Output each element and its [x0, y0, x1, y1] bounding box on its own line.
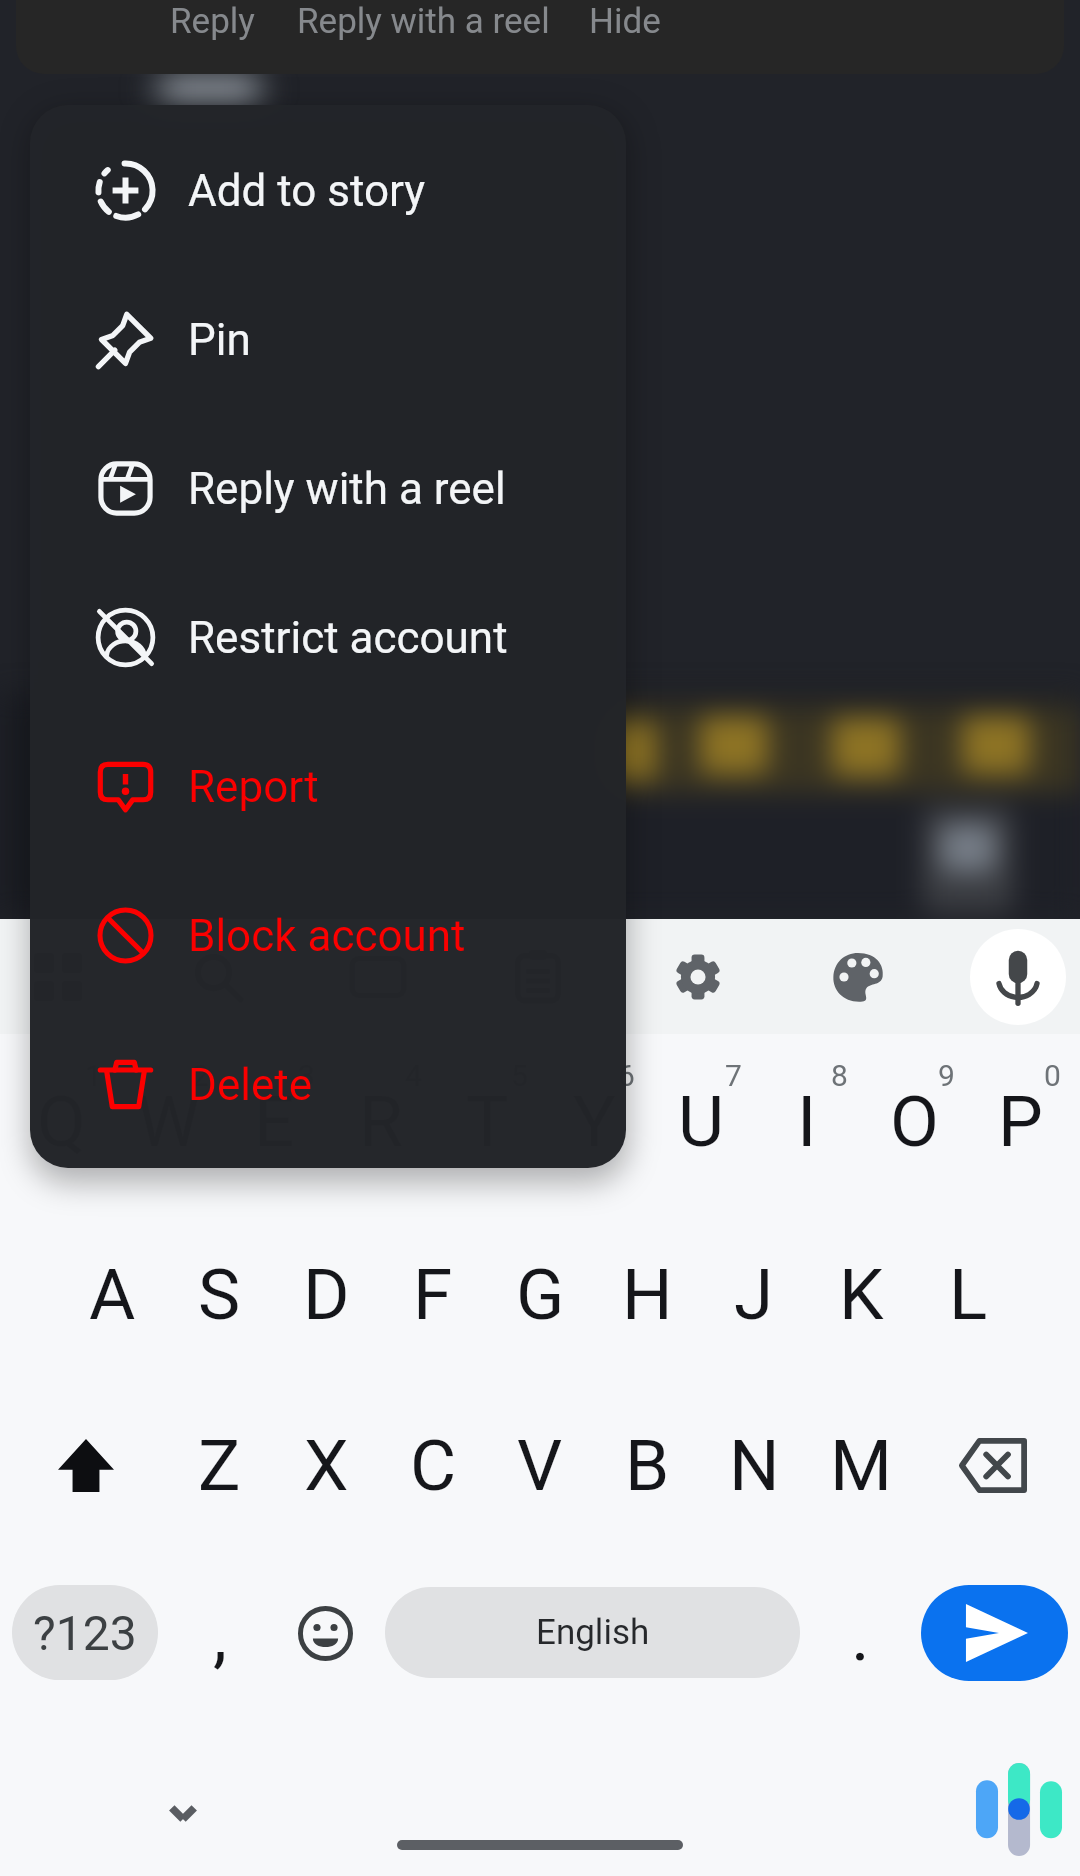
staticText: 0: [1044, 1058, 1061, 1093]
staticText: K: [839, 1253, 884, 1336]
button[interactable]: V: [487, 1380, 593, 1551]
staticText: F: [413, 1253, 453, 1336]
staticText: 8: [831, 1058, 848, 1093]
staticText: A: [89, 1253, 136, 1336]
button[interactable]: 7: [648, 1038, 754, 1209]
staticText: Pin: [188, 314, 251, 366]
button[interactable]: 5: [434, 1038, 540, 1209]
button[interactable]: N: [701, 1380, 807, 1551]
button[interactable]: G: [487, 1209, 593, 1380]
button[interactable]: .: [818, 1547, 902, 1718]
button[interactable]: Delete: [30, 1010, 626, 1159]
button[interactable]: C: [380, 1380, 486, 1551]
button[interactable]: Shift: [8, 1380, 163, 1551]
button[interactable]: Add to story: [30, 116, 626, 265]
staticText: Add to story: [188, 165, 426, 217]
staticText: Restrict account: [188, 612, 508, 664]
staticText: 6: [618, 1058, 635, 1093]
staticText: Y: [573, 1080, 616, 1163]
button[interactable]: H: [594, 1209, 700, 1380]
button[interactable]: Backspace: [915, 1380, 1070, 1551]
button[interactable]: Send: [921, 1585, 1068, 1681]
button[interactable]: 3: [221, 1038, 327, 1209]
staticText: Q: [37, 1080, 86, 1163]
button[interactable]: 4: [328, 1038, 434, 1209]
staticText: U: [678, 1080, 725, 1163]
staticText: Delete: [188, 1059, 312, 1111]
staticText: Block account: [188, 910, 466, 962]
button[interactable]: Themes: [818, 937, 898, 1017]
staticText: L: [949, 1253, 988, 1336]
staticText: 3: [298, 1058, 315, 1093]
button[interactable]: Apps: [18, 937, 98, 1017]
button[interactable]: L: [915, 1209, 1021, 1380]
button[interactable]: ?123: [12, 1585, 158, 1680]
button[interactable]: B: [594, 1380, 700, 1551]
button[interactable]: F: [380, 1209, 486, 1380]
button[interactable]: Pin: [30, 265, 626, 414]
staticText: O: [890, 1080, 939, 1163]
button[interactable]: 9: [861, 1038, 967, 1209]
staticText: E: [254, 1080, 295, 1163]
button[interactable]: M: [808, 1380, 914, 1551]
staticText: ?123: [33, 1605, 137, 1661]
staticText: J: [734, 1253, 774, 1336]
button[interactable]: 0: [967, 1038, 1073, 1209]
button[interactable]: A: [59, 1209, 165, 1380]
button[interactable]: 1: [8, 1038, 114, 1209]
button[interactable]: J: [701, 1209, 807, 1380]
button[interactable]: 2: [115, 1038, 221, 1209]
button[interactable]: K: [808, 1209, 914, 1380]
staticText: Hide: [589, 1, 661, 42]
button[interactable]: Reply with a reel: [297, 0, 550, 74]
button[interactable]: English: [385, 1587, 800, 1678]
button[interactable]: Hide keyboard: [143, 1773, 223, 1853]
staticText: V: [517, 1424, 563, 1507]
button[interactable]: S: [166, 1209, 272, 1380]
staticText: 9: [938, 1058, 955, 1093]
button[interactable]: Voice input: [970, 929, 1066, 1025]
button[interactable]: GIF: [338, 937, 418, 1017]
staticText: Z: [198, 1424, 241, 1507]
button[interactable]: 8: [754, 1038, 860, 1209]
staticText: B: [625, 1424, 670, 1507]
staticText: N: [729, 1424, 780, 1507]
button[interactable]: Reply with a reel: [30, 414, 626, 563]
staticText: English: [536, 1612, 650, 1653]
staticText: H: [622, 1253, 673, 1336]
staticText: 1: [85, 1058, 102, 1093]
button[interactable]: Hide: [589, 0, 661, 74]
staticText: Reply with a reel: [297, 1, 550, 42]
button[interactable]: Settings: [658, 937, 738, 1017]
button[interactable]: Report: [30, 712, 626, 861]
staticText: Reply: [170, 1, 255, 42]
staticText: M: [830, 1424, 892, 1507]
staticText: P: [998, 1080, 1043, 1163]
staticText: G: [516, 1253, 565, 1336]
staticText: 7: [725, 1058, 742, 1093]
staticText: S: [198, 1253, 241, 1336]
staticText: ,: [213, 1594, 227, 1677]
staticText: C: [410, 1424, 457, 1507]
button[interactable]: ,: [178, 1547, 262, 1718]
button[interactable]: D: [273, 1209, 379, 1380]
button[interactable]: X: [273, 1380, 379, 1551]
staticText: D: [303, 1253, 350, 1336]
button[interactable]: Emoji: [283, 1591, 367, 1675]
staticText: .: [851, 1594, 870, 1677]
button[interactable]: Restrict account: [30, 563, 626, 712]
button[interactable]: 6: [541, 1038, 647, 1209]
button[interactable]: Search: [178, 937, 258, 1017]
staticText: X: [304, 1424, 349, 1507]
staticText: 2: [192, 1058, 209, 1093]
button[interactable]: Reply: [170, 0, 255, 74]
button[interactable]: Block account: [30, 861, 626, 1010]
staticText: Report: [188, 761, 319, 813]
staticText: W: [137, 1080, 200, 1163]
button[interactable]: Z: [166, 1380, 272, 1551]
staticText: I: [797, 1080, 817, 1163]
